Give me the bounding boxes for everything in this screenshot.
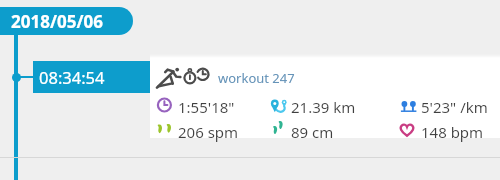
staticText: 1:55'18" xyxy=(178,97,235,117)
staticText: 2018/05/06 xyxy=(11,10,103,33)
other: Running workout xyxy=(155,66,210,88)
staticText: 89 cm xyxy=(291,122,334,142)
button[interactable] xyxy=(150,57,500,138)
button[interactable]: 08:34:54 xyxy=(33,61,150,93)
staticText: 08:34:54 xyxy=(39,66,105,88)
button[interactable]: 2018/05/06 xyxy=(0,7,133,35)
staticText: 21.39 km xyxy=(291,97,356,117)
staticText: workout 247 xyxy=(218,69,295,87)
staticText: 148 bpm xyxy=(421,122,484,142)
staticText: 206 spm xyxy=(178,122,239,142)
staticText: 5'23" /km xyxy=(421,97,488,117)
